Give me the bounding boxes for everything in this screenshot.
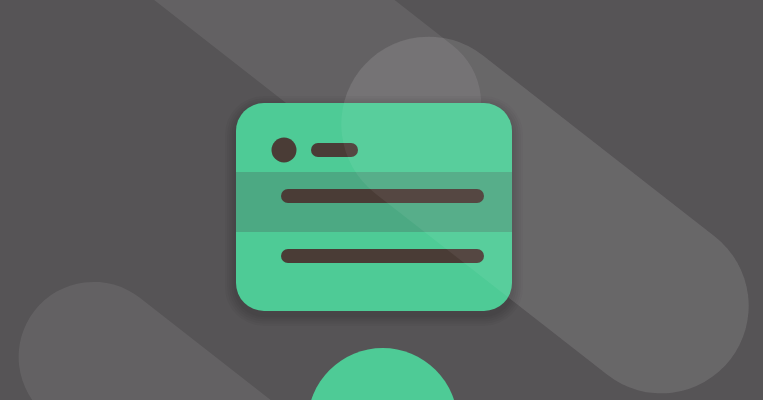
button[interactable]: Card preview: [0, 0, 763, 400]
